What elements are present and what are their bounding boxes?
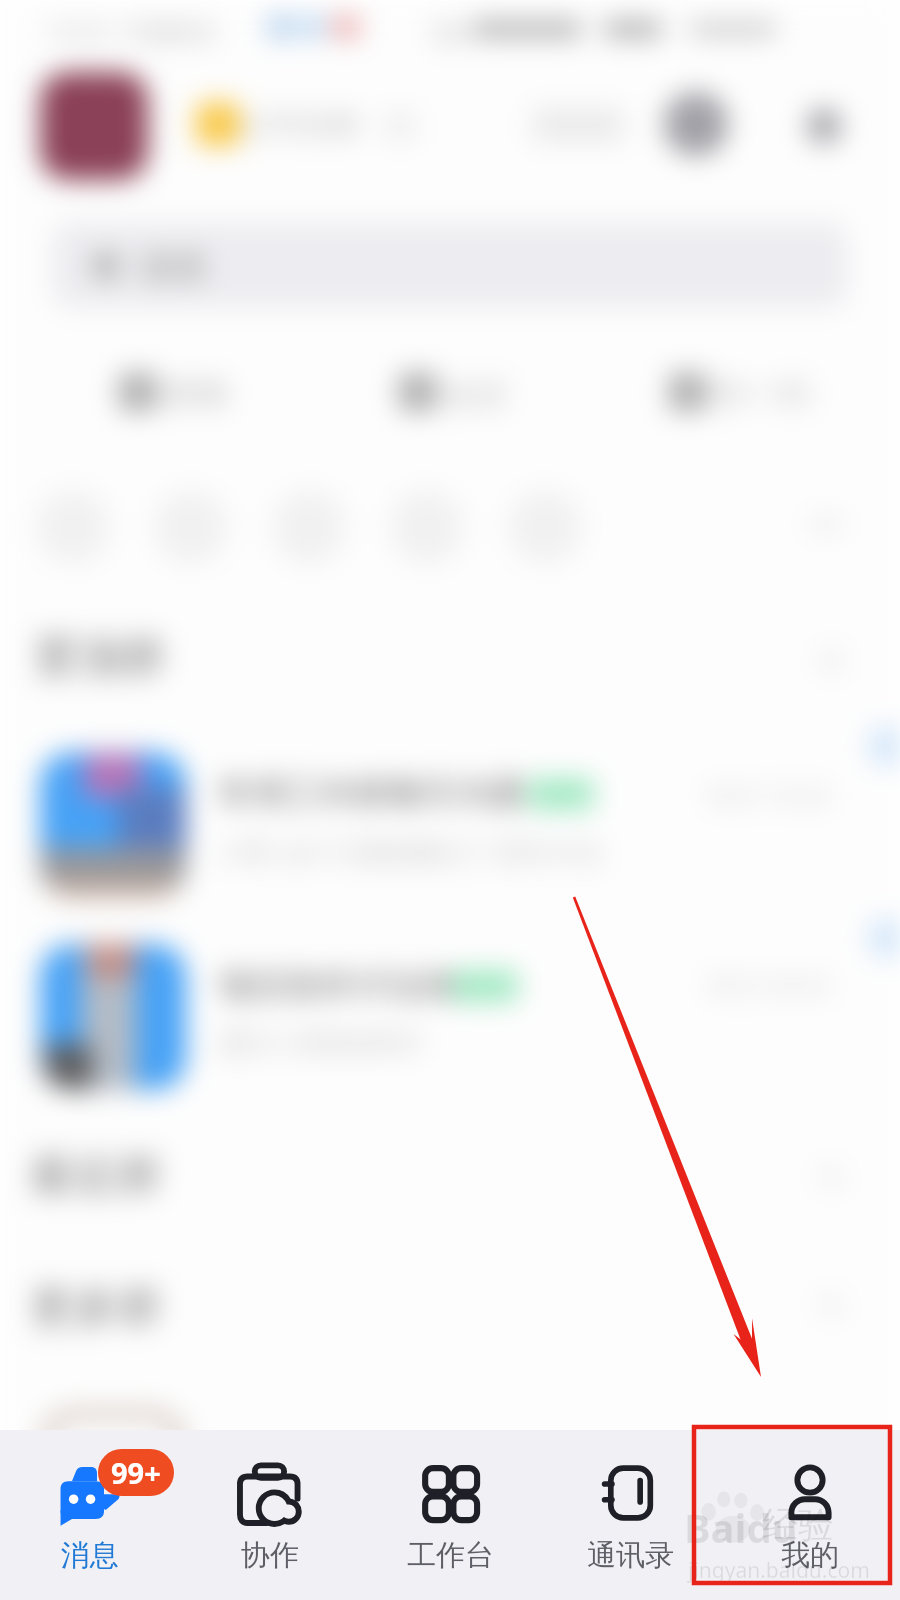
button[interactable]: 项目协作讨论组 xyxy=(0,922,900,1110)
staticText: 搜索 xyxy=(140,246,208,289)
button[interactable]: 联系人 5 xyxy=(502,484,588,570)
button[interactable]: 打开个人头像 xyxy=(32,64,156,188)
staticText: 5G xyxy=(432,14,466,49)
staticText: 常用工作群聊天沟通 xyxy=(218,772,524,815)
staticText: 消息 xyxy=(61,1537,119,1574)
staticText: 工作台 xyxy=(407,1537,494,1574)
button[interactable]: 更多 xyxy=(796,100,852,156)
button[interactable]: 联系人 1 xyxy=(30,484,116,570)
staticText: 群聊 xyxy=(164,374,228,414)
staticText: 更多群 xyxy=(30,1280,162,1335)
staticText: 经验 xyxy=(762,1502,834,1547)
button[interactable]: 添加 xyxy=(660,88,732,160)
button[interactable]: 常用工作群聊天沟通 xyxy=(0,730,900,918)
staticText: 会议 xyxy=(444,374,508,414)
button[interactable]: 协作 xyxy=(180,1430,360,1600)
button[interactable]: 会议 xyxy=(384,356,584,428)
staticText: 我的 xyxy=(781,1537,839,1574)
staticText: 99+ xyxy=(111,1453,161,1492)
button[interactable]: 联系人 3 xyxy=(266,484,352,570)
button[interactable]: 群聊 xyxy=(104,356,304,428)
button[interactable]: 工作台 xyxy=(360,1430,540,1600)
staticText: 置顶群 xyxy=(34,630,166,685)
staticText: 公司名称 xyxy=(240,106,360,144)
staticText: 协作 xyxy=(241,1537,299,1574)
button[interactable]: 99+ xyxy=(0,1430,180,1600)
button[interactable]: 我的 xyxy=(720,1430,900,1600)
button[interactable]: 扫一扫 xyxy=(654,356,854,428)
staticText: 最近群 xyxy=(30,1148,162,1203)
button[interactable]: 联系人 2 xyxy=(148,484,234,570)
staticText: 项目协作讨论组 xyxy=(218,964,456,1007)
button[interactable]: 搜索 xyxy=(52,222,848,308)
staticText: jingyan.baidu.com xyxy=(688,1556,870,1585)
button[interactable]: 联系人 4 xyxy=(384,484,470,570)
button[interactable]: 通讯录 xyxy=(540,1430,720,1600)
staticText: 扫一扫 xyxy=(714,374,810,414)
staticText: 通讯录 xyxy=(587,1537,674,1574)
staticText: Baidu xyxy=(684,1500,798,1554)
